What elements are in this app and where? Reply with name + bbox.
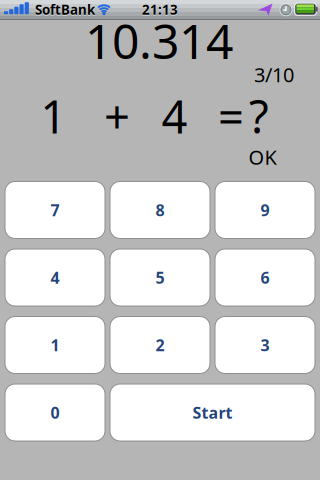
staticText: 21:13	[142, 1, 178, 18]
staticText: 7	[50, 199, 59, 221]
staticText: SoftBank	[35, 2, 95, 19]
button[interactable]: 1	[5, 316, 105, 373]
staticText: 3/10	[254, 61, 294, 88]
button[interactable]: 7	[5, 181, 105, 238]
staticText: Start	[192, 402, 232, 423]
staticText: 1	[50, 334, 59, 356]
staticText: 4	[50, 267, 59, 288]
button[interactable]: 3	[215, 316, 315, 373]
button[interactable]: 9	[215, 181, 315, 238]
button[interactable]: 2	[110, 316, 210, 373]
staticText: 0	[50, 402, 59, 423]
staticText: 8	[155, 199, 164, 221]
staticText: +	[104, 86, 130, 146]
staticText: SoftBank	[35, 1, 95, 18]
button[interactable]: Start	[110, 384, 315, 441]
staticText: =	[218, 86, 244, 146]
staticText: 5	[155, 267, 164, 288]
staticText: 1	[40, 86, 66, 146]
button[interactable]: 6	[215, 249, 315, 306]
button[interactable]: 5	[110, 249, 210, 306]
staticText: 3	[260, 334, 269, 356]
staticText: 2	[155, 334, 164, 356]
button[interactable]: 8	[110, 181, 210, 238]
staticText: 10.314	[85, 9, 233, 72]
staticText: OK	[248, 144, 276, 170]
staticText: 21:13	[142, 2, 178, 19]
button[interactable]: 0	[5, 384, 105, 441]
staticText: 6	[260, 267, 269, 288]
staticText: 4	[161, 86, 187, 146]
button[interactable]: 4	[5, 249, 105, 306]
staticText: ?	[249, 86, 269, 146]
staticText: 9	[260, 199, 269, 221]
